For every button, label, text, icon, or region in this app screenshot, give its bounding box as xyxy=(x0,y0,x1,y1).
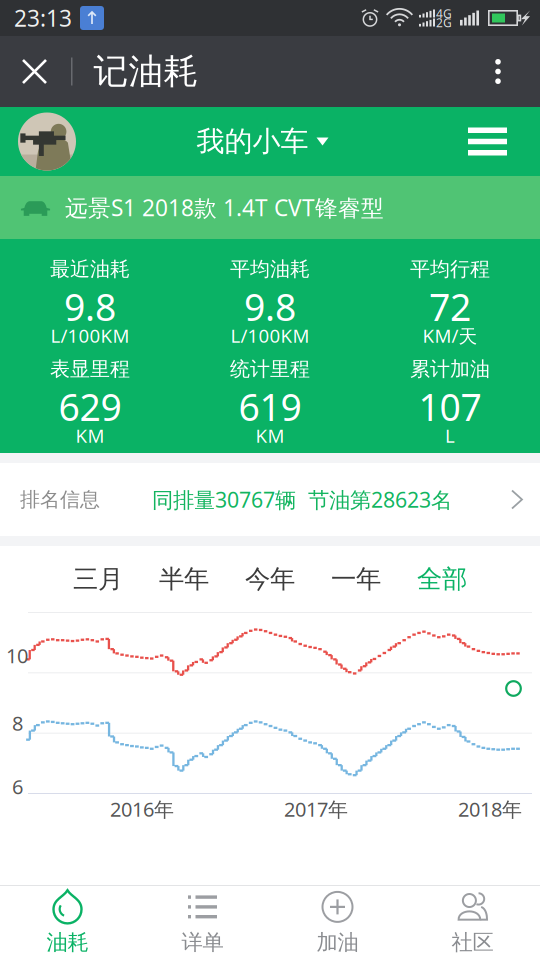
staticText: L xyxy=(445,423,455,448)
staticText: KM xyxy=(75,423,104,448)
staticText: 加油 xyxy=(316,929,358,956)
button[interactable]: 详单 xyxy=(135,886,270,960)
button[interactable]: 全部 xyxy=(399,552,485,606)
button[interactable]: 加油 xyxy=(270,886,405,960)
staticText: 2017年 xyxy=(284,796,348,822)
staticText: 8 xyxy=(12,710,23,736)
button[interactable]: Menu xyxy=(449,112,540,170)
staticText: 平均行程 xyxy=(410,257,490,281)
staticText: 10 xyxy=(6,642,28,669)
staticText: 我的小车 xyxy=(196,124,308,159)
button[interactable]: 排名信息 xyxy=(0,463,540,536)
staticText: 统计里程 xyxy=(230,357,310,381)
staticText: 表显里程 xyxy=(50,357,130,381)
staticText: 2018年 xyxy=(458,796,522,822)
staticText: 4G xyxy=(436,5,452,21)
staticText: 排名信息 xyxy=(20,487,100,512)
staticText: 107 xyxy=(418,382,481,431)
staticText: 同排量30767辆 节油第28623名 xyxy=(152,485,452,514)
staticText: 2016年 xyxy=(110,796,174,822)
staticText: 最近油耗 xyxy=(50,257,130,281)
staticText: 9.8 xyxy=(64,282,116,331)
staticText: 累计加油 xyxy=(410,357,490,381)
staticText: 一年 xyxy=(331,563,381,594)
staticText: 今年 xyxy=(245,563,295,594)
staticText: 6 xyxy=(12,773,23,800)
button[interactable]: Close xyxy=(0,36,71,107)
staticText: 2G xyxy=(436,14,452,30)
button[interactable]: 今年 xyxy=(227,552,313,606)
button[interactable]: 半年 xyxy=(141,552,227,606)
staticText: 72 xyxy=(429,282,471,331)
staticText: 社区 xyxy=(451,929,493,956)
button[interactable]: More options xyxy=(472,36,540,107)
staticText: 远景S1 2018款 1.4T CVT锋睿型 xyxy=(65,192,384,222)
staticText: 629 xyxy=(58,382,121,431)
staticText: 油耗 xyxy=(46,929,88,956)
staticText: 详单 xyxy=(181,929,223,956)
staticText: 23:13 xyxy=(14,3,72,33)
staticText: 平均油耗 xyxy=(230,257,310,281)
staticText: 三月 xyxy=(73,563,123,594)
button[interactable]: 油耗 xyxy=(0,886,135,960)
staticText: 记油耗 xyxy=(93,50,198,93)
staticText: 619 xyxy=(238,382,301,431)
staticText: KM xyxy=(255,423,284,448)
staticText: 半年 xyxy=(159,563,209,594)
staticText: L/100KM xyxy=(50,323,129,348)
staticText: KM/天 xyxy=(422,323,477,348)
button[interactable]: 三月 xyxy=(55,552,141,606)
staticText: L/100KM xyxy=(230,323,309,348)
button[interactable]: 社区 xyxy=(405,886,540,960)
button[interactable]: 一年 xyxy=(313,552,399,606)
staticText: 9.8 xyxy=(244,282,296,331)
staticText: 全部 xyxy=(417,563,467,594)
button[interactable]: 我的小车 xyxy=(188,118,336,164)
